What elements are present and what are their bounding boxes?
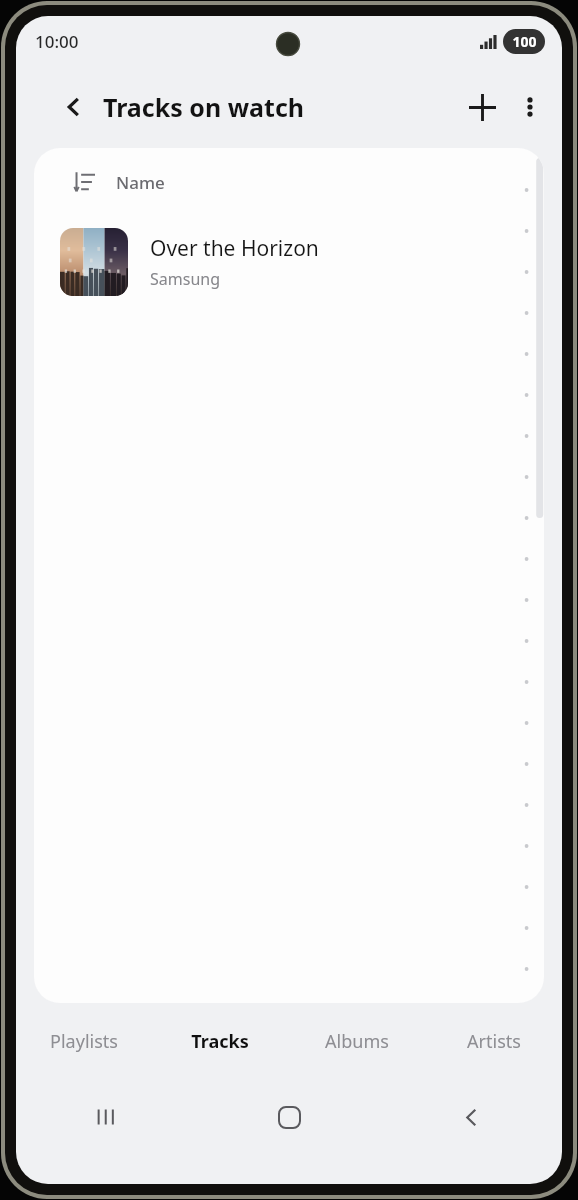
- button[interactable]: Artists: [425, 1003, 562, 1079]
- staticText: Over the Horizon: [150, 234, 319, 263]
- button[interactable]: More options: [506, 83, 554, 131]
- staticText: Tracks on watch: [103, 90, 305, 124]
- button[interactable]: Albums: [288, 1003, 425, 1079]
- staticText: Tracks: [191, 1029, 249, 1054]
- staticText: Playlists: [50, 1029, 118, 1054]
- button[interactable]: Tracks: [152, 1003, 288, 1079]
- staticText: Name: [116, 171, 165, 194]
- staticText: 10:00: [35, 30, 79, 53]
- button[interactable]: Home: [198, 1079, 380, 1155]
- staticText: Artists: [467, 1029, 521, 1054]
- button[interactable]: Name: [34, 148, 544, 216]
- staticText: Albums: [325, 1029, 389, 1054]
- button[interactable]: Back: [380, 1079, 562, 1155]
- staticText: 100: [512, 32, 537, 51]
- button[interactable]: Back: [52, 85, 96, 129]
- staticText: Samsung: [150, 268, 221, 290]
- button[interactable]: Add: [458, 83, 506, 131]
- button[interactable]: Recents: [16, 1079, 198, 1155]
- button[interactable]: Over the Horizon: [34, 216, 544, 308]
- button[interactable]: Playlists: [16, 1003, 152, 1079]
